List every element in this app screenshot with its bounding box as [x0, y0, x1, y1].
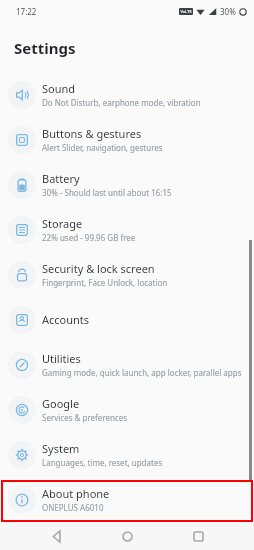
- button[interactable]: Back: [43, 522, 71, 550]
- button[interactable]: Accounts: [0, 297, 254, 342]
- staticText: Security & lock screen: [42, 261, 155, 276]
- button[interactable]: Battery: [0, 162, 254, 207]
- button[interactable]: Sound: [0, 72, 254, 117]
- staticText: Google: [42, 396, 80, 411]
- staticText: Utilities: [42, 351, 81, 366]
- button[interactable]: Security & lock screen: [0, 252, 254, 297]
- staticText: Accounts: [42, 312, 90, 327]
- button[interactable]: Recents: [184, 522, 212, 550]
- staticText: Storage: [42, 216, 83, 231]
- button[interactable]: Home: [113, 522, 141, 550]
- staticText: VoLTE: [180, 9, 192, 14]
- staticText: Do Not Disturb, earphone mode, vibration: [42, 97, 201, 108]
- staticText: Gaming mode, quick launch, app locker, p…: [42, 367, 242, 378]
- staticText: 22% used - 99.96 GB free: [42, 232, 136, 243]
- button[interactable]: Utilities: [0, 342, 254, 387]
- staticText: 17:22: [16, 6, 37, 17]
- staticText: 30% - Should last until about 16:15: [42, 187, 172, 198]
- staticText: About phone: [42, 486, 110, 501]
- button[interactable]: Storage: [0, 207, 254, 252]
- staticText: Battery: [42, 171, 80, 186]
- staticText: Alert Slider, navigation, gestures: [42, 142, 163, 153]
- staticText: 30%: [220, 6, 236, 17]
- staticText: Languages, time, reset, updates: [42, 457, 163, 468]
- staticText: System: [42, 441, 80, 456]
- staticText: Services & preferences: [42, 412, 128, 423]
- staticText: Buttons & gestures: [42, 126, 142, 141]
- button[interactable]: Google: [0, 387, 254, 432]
- button[interactable]: Buttons & gestures: [0, 117, 254, 162]
- button[interactable]: System: [0, 432, 254, 477]
- staticText: Settings: [14, 38, 76, 58]
- button[interactable]: About phone: [0, 477, 254, 522]
- staticText: ONEPLUS A6010: [42, 502, 104, 513]
- staticText: Sound: [42, 81, 76, 96]
- staticText: Fingerprint, Face Unlock, location: [42, 277, 168, 288]
